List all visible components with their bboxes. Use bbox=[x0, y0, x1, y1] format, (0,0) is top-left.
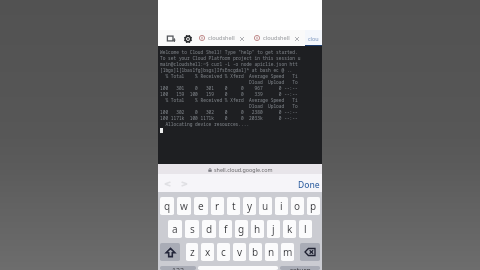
button[interactable]: New tab bbox=[164, 32, 177, 45]
button[interactable]: Shift bbox=[160, 243, 180, 261]
staticText: 100 1171k 100 1171k 0 0 2033k 0 --:-- bbox=[160, 115, 298, 121]
staticText: cloudshell bbox=[208, 34, 235, 42]
button[interactable]: p bbox=[307, 197, 320, 215]
staticText: cloudshell bbox=[263, 34, 290, 42]
button[interactable]: Settings bbox=[181, 32, 194, 45]
staticText: Dload Upload To bbox=[160, 79, 298, 85]
button[interactable]: u bbox=[259, 197, 272, 215]
button[interactable]: b bbox=[249, 243, 262, 261]
staticText: u bbox=[262, 199, 269, 213]
staticText: r bbox=[215, 199, 220, 213]
button[interactable]: l bbox=[299, 220, 312, 238]
staticText: w bbox=[180, 199, 188, 213]
button[interactable]: q bbox=[160, 197, 174, 215]
button[interactable]: c bbox=[217, 243, 230, 261]
staticText: 123 bbox=[172, 266, 185, 270]
button[interactable]: Close tab bbox=[293, 35, 300, 42]
staticText: y bbox=[247, 199, 253, 213]
staticText: q bbox=[164, 199, 171, 213]
button[interactable]: o bbox=[291, 197, 304, 215]
button[interactable]: e bbox=[194, 197, 208, 215]
button[interactable]: h bbox=[251, 220, 264, 238]
button[interactable]: 123 bbox=[160, 266, 196, 270]
button[interactable]: z bbox=[186, 243, 198, 261]
button[interactable]: Previous field bbox=[161, 177, 173, 189]
button[interactable]: Close tab bbox=[238, 35, 245, 42]
staticText: Welcome to Cloud Shell! Type "help" to g… bbox=[160, 49, 298, 55]
staticText: To set your Cloud Platform project in th… bbox=[160, 55, 301, 61]
button[interactable]: Backspace bbox=[300, 243, 320, 261]
staticText: h bbox=[254, 222, 261, 236]
staticText: % Total % Received % Xferd Average Speed… bbox=[160, 73, 298, 79]
staticText: g bbox=[238, 222, 245, 236]
button[interactable]: r bbox=[211, 197, 224, 215]
button[interactable]: cloudshell bbox=[199, 30, 245, 46]
staticText: f bbox=[224, 222, 228, 236]
staticText: j bbox=[272, 222, 275, 236]
staticText: % Total % Received % Xferd Average Speed… bbox=[160, 97, 298, 103]
staticText: clou bbox=[308, 35, 319, 42]
button[interactable]: t bbox=[227, 197, 240, 215]
staticText: main@cloudshell:~$ curl -L -o node apicl… bbox=[160, 61, 298, 67]
button[interactable]: cloudshell bbox=[254, 30, 300, 46]
button[interactable]: w bbox=[177, 197, 191, 215]
staticText: d bbox=[206, 222, 213, 236]
button[interactable]: i bbox=[275, 197, 288, 215]
button[interactable]: j bbox=[267, 220, 280, 238]
button[interactable]: m bbox=[281, 243, 294, 261]
staticText: 100 159 100 159 0 0 339 0 --:-- bbox=[160, 91, 298, 97]
button[interactable] bbox=[198, 266, 278, 270]
staticText: s bbox=[190, 222, 195, 236]
staticText: c bbox=[221, 245, 226, 259]
staticText: n bbox=[268, 245, 275, 259]
staticText: k bbox=[287, 222, 293, 236]
button[interactable]: return bbox=[280, 266, 320, 270]
button[interactable]: g bbox=[235, 220, 248, 238]
staticText: shell.cloud.google.com bbox=[214, 166, 273, 173]
button[interactable]: s bbox=[185, 220, 199, 238]
staticText: Allocating device resources.... bbox=[160, 121, 250, 127]
staticText: a bbox=[172, 222, 178, 236]
button[interactable]: Done bbox=[298, 179, 320, 190]
staticText: x bbox=[205, 245, 211, 259]
button[interactable]: d bbox=[202, 220, 216, 238]
button[interactable]: v bbox=[233, 243, 246, 261]
staticText: Dload Upload To bbox=[160, 103, 298, 109]
staticText: t bbox=[232, 199, 236, 213]
button[interactable]: Next field bbox=[178, 177, 190, 189]
button[interactable]: clou bbox=[305, 30, 322, 46]
staticText: i bbox=[280, 199, 283, 213]
button[interactable]: k bbox=[283, 220, 296, 238]
button[interactable]: y bbox=[243, 197, 256, 215]
staticText: p bbox=[310, 199, 317, 213]
staticText: l bbox=[304, 222, 307, 236]
staticText: b bbox=[252, 245, 259, 259]
staticText: z bbox=[190, 245, 195, 259]
button[interactable]: x bbox=[201, 243, 214, 261]
button[interactable]: a bbox=[168, 220, 182, 238]
staticText: v bbox=[237, 245, 243, 259]
staticText: 100 302 0 302 0 0 2380 0 --:-- bbox=[160, 109, 298, 115]
staticText: m bbox=[283, 245, 293, 259]
button[interactable]: n bbox=[265, 243, 278, 261]
staticText: o bbox=[294, 199, 301, 213]
button[interactable]: f bbox=[219, 220, 232, 238]
staticText: [1bgx]1[1bas1fg]bsgs]IfsEncgda1]* at bas… bbox=[160, 67, 293, 73]
staticText: 100 301 0 301 0 0 967 0 --:-- bbox=[160, 85, 298, 91]
staticText: Done bbox=[298, 179, 320, 190]
staticText: e bbox=[198, 199, 204, 213]
staticText: return bbox=[290, 266, 311, 270]
